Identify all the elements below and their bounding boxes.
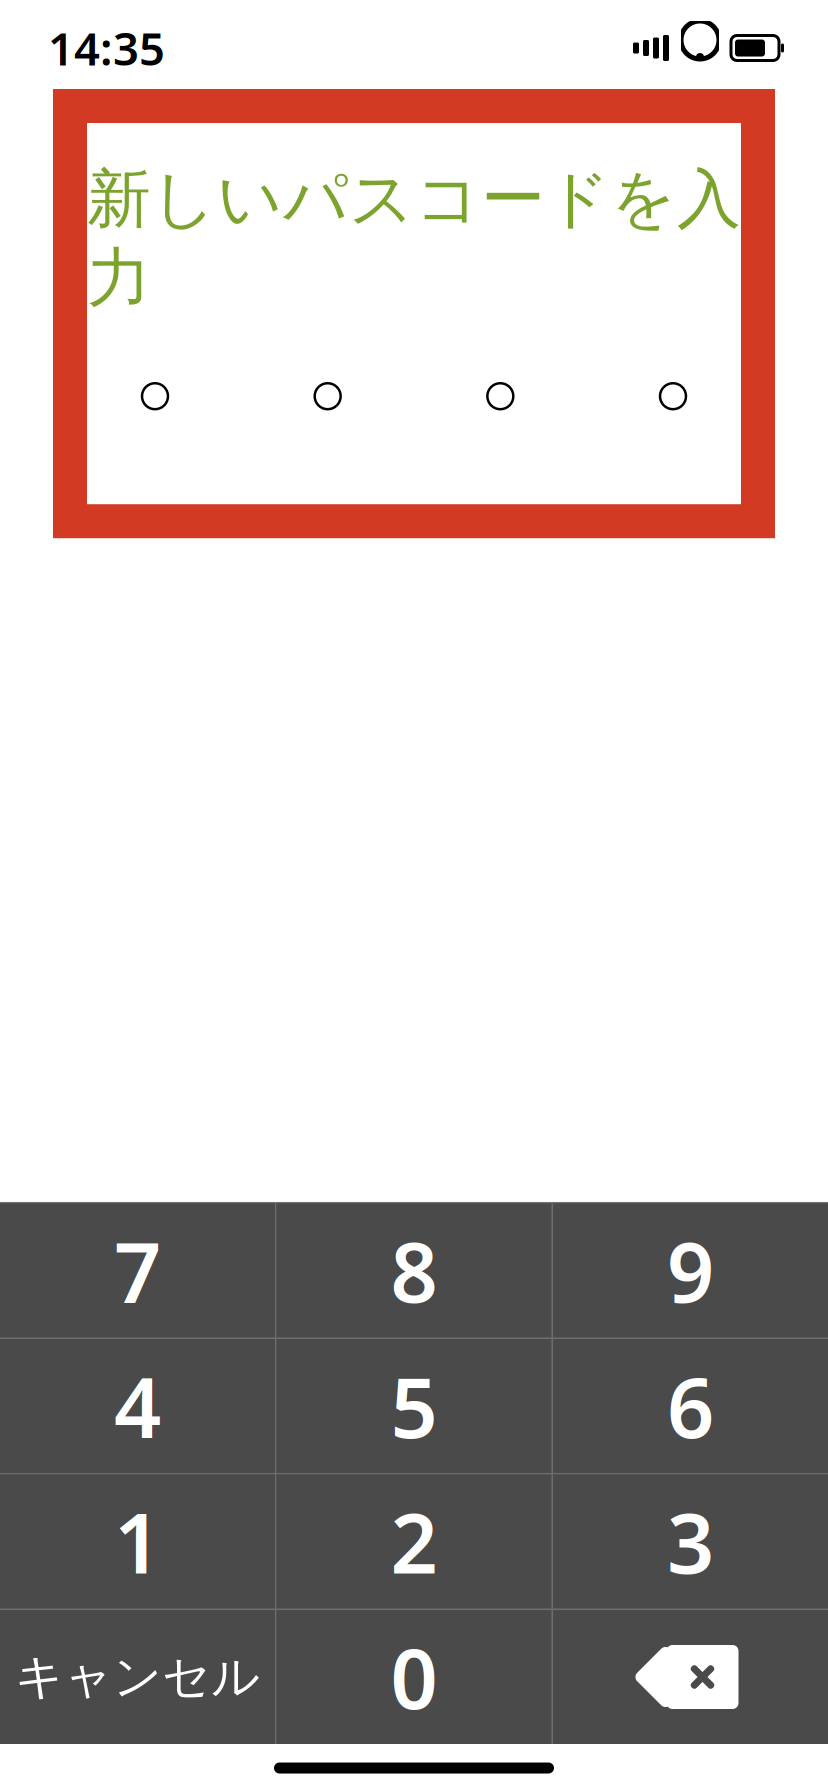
button[interactable]: 2 — [276, 1474, 551, 1608]
button[interactable]: Delete — [553, 1610, 828, 1744]
staticText: 8 — [390, 1216, 437, 1325]
staticText: 6 — [667, 1351, 714, 1461]
staticText: 14:35 — [48, 18, 165, 78]
staticText: キャンセル — [15, 1647, 260, 1706]
staticText: 9 — [667, 1216, 714, 1325]
button[interactable]: 5 — [276, 1339, 551, 1473]
button[interactable]: 9 — [553, 1203, 828, 1337]
staticText: 7 — [114, 1216, 161, 1325]
button[interactable]: 6 — [553, 1339, 828, 1473]
staticText: 3 — [667, 1487, 714, 1596]
staticText: 5 — [390, 1351, 437, 1461]
button[interactable]: 7 — [0, 1203, 275, 1337]
staticText: 1 — [114, 1487, 161, 1596]
button[interactable]: 0 — [276, 1610, 551, 1744]
button[interactable]: 3 — [553, 1474, 828, 1608]
staticText: 2 — [390, 1487, 437, 1596]
staticText: 0 — [390, 1622, 437, 1732]
button[interactable]: 4 — [0, 1339, 275, 1473]
button[interactable]: キャンセル — [0, 1610, 275, 1744]
button[interactable]: 1 — [0, 1474, 275, 1608]
staticText: 4 — [114, 1351, 161, 1461]
staticText: 新しいパスコードを入力 — [87, 160, 741, 317]
button[interactable]: 8 — [276, 1203, 551, 1337]
